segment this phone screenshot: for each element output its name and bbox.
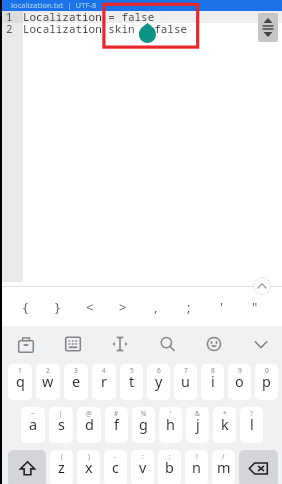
button[interactable]: * [213, 407, 236, 443]
button[interactable]: Expand keyboard [253, 277, 271, 295]
staticText: 8 [211, 366, 215, 375]
button[interactable]: # [105, 407, 128, 443]
button[interactable]: ; [158, 450, 181, 484]
staticText: p [262, 372, 271, 392]
staticText: 6 [157, 366, 161, 375]
button[interactable]: ' [159, 407, 182, 443]
staticText: ' [170, 409, 172, 418]
staticText: 3 [74, 366, 78, 375]
staticText: - [114, 452, 117, 461]
staticText: 1 [18, 366, 22, 375]
button[interactable]: ( [50, 450, 73, 484]
staticText: j [196, 415, 200, 435]
staticText: ? [250, 409, 253, 418]
button[interactable]: Keyboard settings [47, 326, 94, 364]
button[interactable]: Move cursor [94, 326, 141, 364]
button[interactable]: ' [205, 287, 238, 326]
staticText: 5 [130, 366, 134, 375]
staticText: 2 [6, 21, 13, 33]
button[interactable]: @ [77, 407, 101, 443]
staticText: r [101, 372, 107, 392]
button[interactable]: 5 [120, 364, 143, 400]
staticText: ! [196, 452, 198, 461]
staticText: " [252, 298, 258, 316]
staticText: l [250, 415, 254, 435]
staticText: / [222, 452, 225, 461]
staticText: e [72, 372, 81, 392]
button[interactable]: 2 [36, 364, 60, 400]
button[interactable]: - [104, 450, 127, 484]
button[interactable]: % [132, 407, 155, 443]
staticText: ( [61, 452, 63, 461]
staticText: # [114, 409, 119, 418]
button[interactable]: 9 [228, 364, 251, 400]
button[interactable]: 0 [255, 364, 278, 400]
button[interactable]: 6 [147, 364, 170, 400]
staticText: 1 [6, 9, 13, 21]
button[interactable]: 1 [8, 364, 32, 400]
button[interactable]: Shift [8, 450, 46, 484]
button[interactable]: : [131, 450, 154, 484]
staticText: ) [88, 452, 90, 461]
staticText: m [217, 458, 231, 478]
button[interactable]: Emoji [188, 326, 235, 364]
button[interactable]: / [212, 450, 235, 484]
staticText: z [58, 458, 65, 478]
button[interactable]: & [186, 407, 209, 443]
button[interactable]: ! [185, 450, 208, 484]
staticText: w [42, 372, 54, 392]
staticText: a [29, 415, 38, 435]
button[interactable]: > [106, 287, 139, 326]
button[interactable]: 3 [64, 364, 88, 400]
staticText: c [112, 458, 119, 478]
button[interactable]: ) [77, 450, 100, 484]
button[interactable]: < [73, 287, 106, 326]
button[interactable]: ~ [21, 407, 45, 443]
button[interactable]: { [9, 287, 41, 326]
button[interactable]: ; [172, 287, 205, 326]
button[interactable]: Backspace [239, 450, 278, 484]
staticText: x [85, 458, 93, 478]
button[interactable]: Clipboard [0, 326, 47, 364]
staticText: h [166, 415, 175, 435]
staticText: ; [169, 452, 171, 461]
staticText: g [139, 415, 148, 435]
staticText: d [85, 415, 94, 435]
button[interactable]: , [139, 287, 172, 326]
staticText: v [139, 458, 147, 478]
staticText: * [223, 409, 227, 418]
staticText: 9 [238, 366, 242, 375]
button[interactable]: } [41, 287, 73, 326]
button[interactable]: 8 [201, 364, 224, 400]
staticText: k [221, 415, 229, 435]
staticText: > [119, 298, 127, 316]
staticText: 0 [265, 366, 269, 375]
staticText: % [141, 409, 147, 418]
button[interactable]: 4 [92, 364, 116, 400]
button[interactable]: " [238, 287, 271, 326]
staticText: @ [86, 409, 92, 418]
staticText: 4 [102, 366, 106, 375]
staticText: | [59, 409, 63, 418]
staticText: s [58, 415, 65, 435]
staticText: & [195, 409, 200, 418]
button[interactable]: | [49, 407, 73, 443]
staticText: ' [220, 298, 223, 316]
button[interactable]: Search [141, 326, 188, 364]
staticText: n [192, 458, 201, 478]
button[interactable]: Scroll [258, 13, 278, 42]
staticText: Localization = false [23, 9, 155, 21]
staticText: } [55, 298, 60, 316]
button[interactable]: ? [240, 407, 263, 443]
staticText: t [129, 372, 135, 392]
staticText: u [181, 372, 190, 392]
button[interactable]: 7 [174, 364, 197, 400]
staticText: y [155, 372, 163, 392]
staticText: localization.txt | UTF-8 [11, 0, 97, 10]
staticText: : [142, 452, 144, 461]
staticText: o [235, 372, 244, 392]
staticText: ; [187, 298, 191, 316]
staticText: 7 [184, 366, 188, 375]
button[interactable]: Hide keyboard [235, 326, 282, 364]
staticText: , [154, 298, 158, 316]
